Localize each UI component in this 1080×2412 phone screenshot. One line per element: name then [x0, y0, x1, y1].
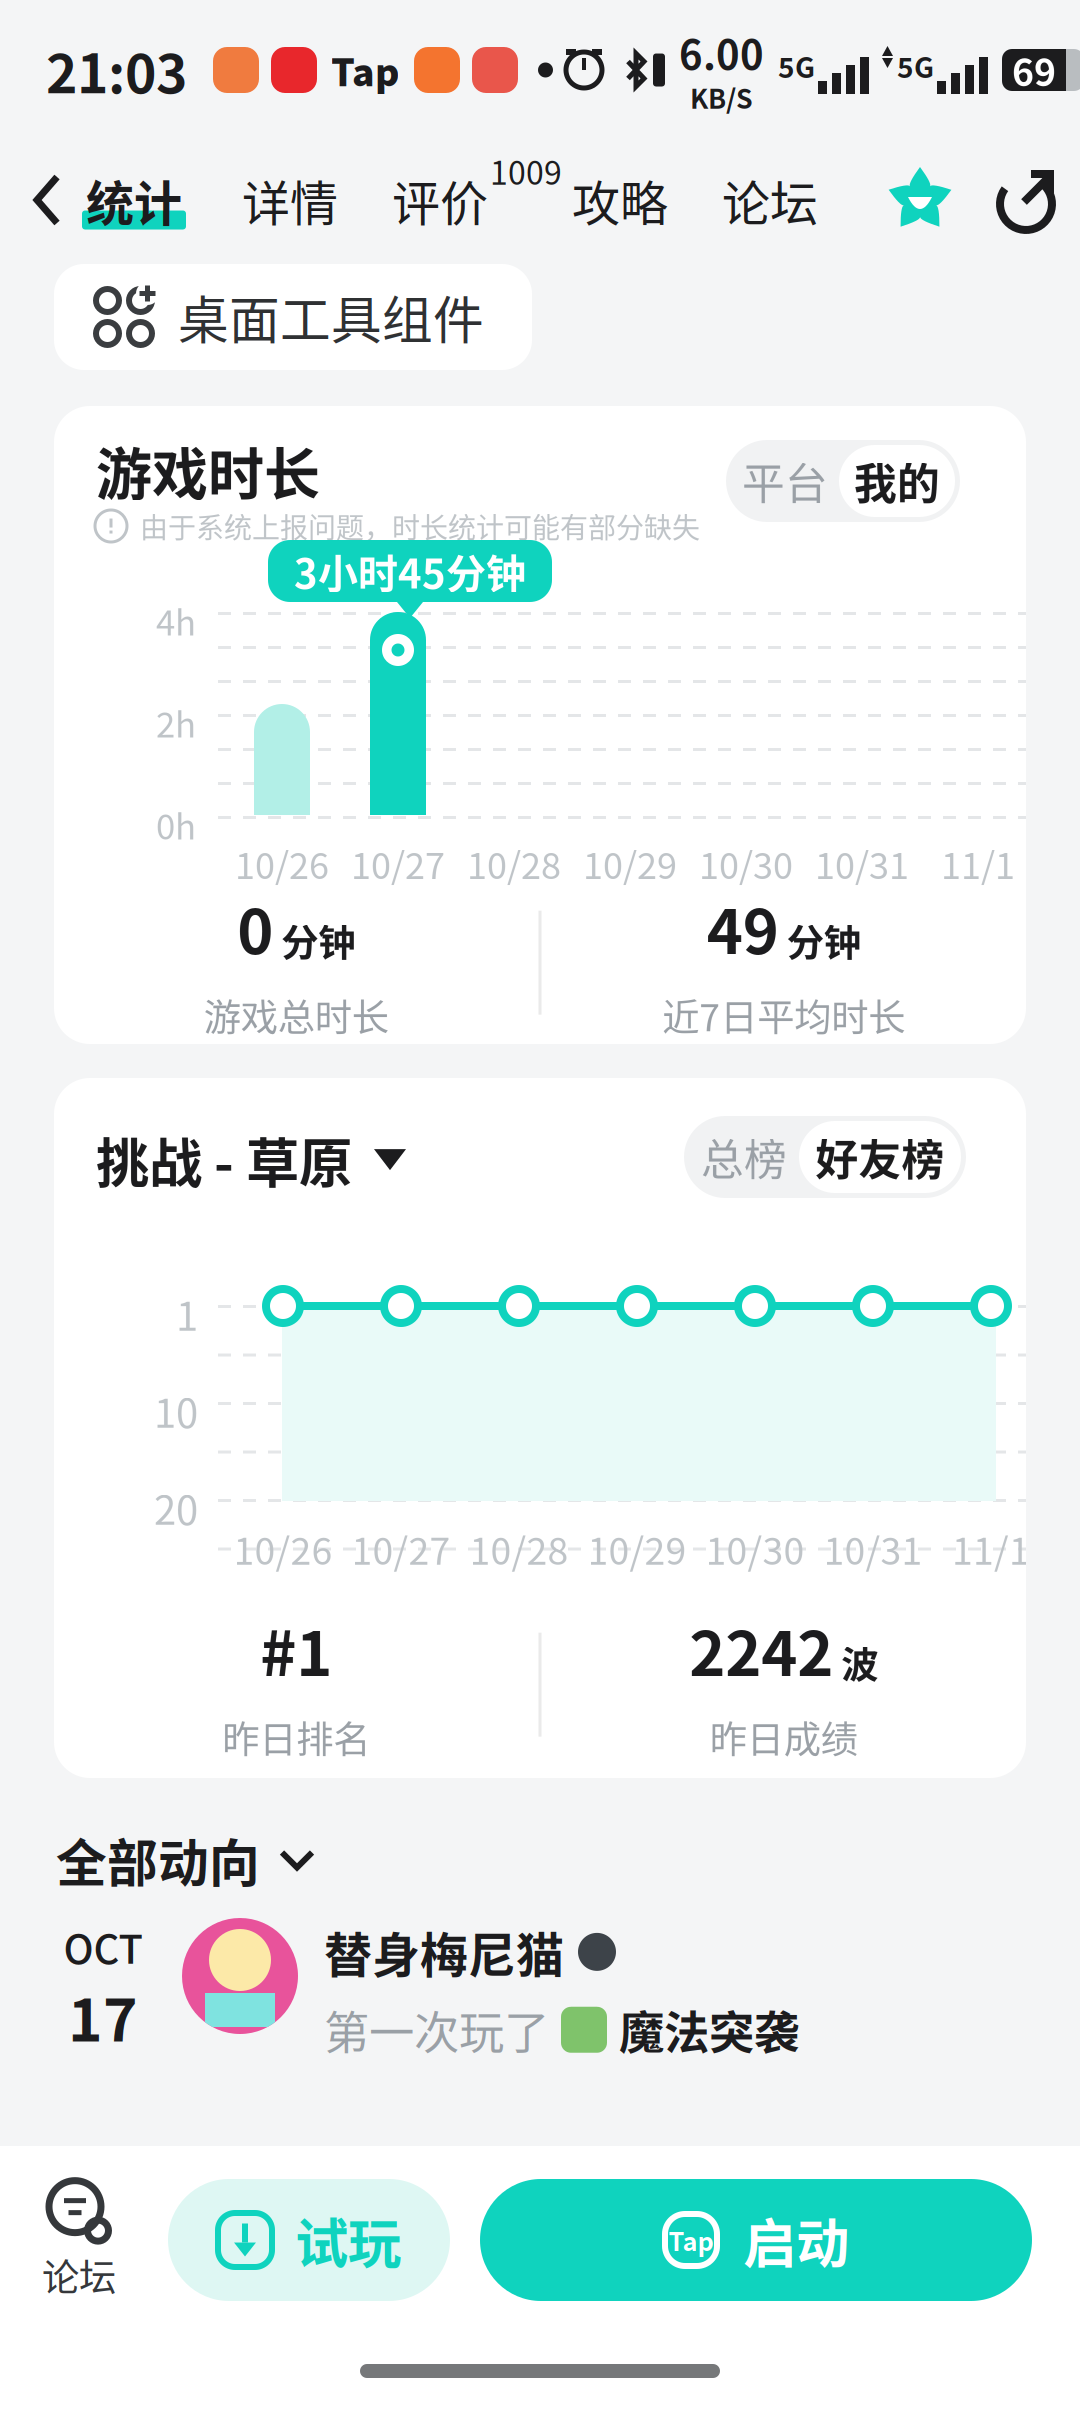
button[interactable]: 论坛: [722, 150, 818, 250]
staticText: 昨日成绩: [710, 1711, 858, 1763]
staticText: 统计: [86, 166, 182, 234]
staticText: 5G: [897, 46, 934, 85]
button[interactable]: 我的: [839, 445, 955, 517]
staticText: 全部动向: [56, 1824, 260, 1896]
button[interactable]: 攻略: [572, 150, 668, 250]
staticText: 10/30: [699, 838, 793, 889]
staticText: 游戏总时长: [204, 989, 389, 1041]
staticText: 分钟: [281, 914, 355, 967]
staticText: 10/28: [467, 838, 561, 889]
staticText: 10/30: [705, 1522, 804, 1575]
staticText: 替身梅尼猫: [324, 1918, 564, 1986]
staticText: 10/27: [351, 838, 445, 889]
staticText: 好友榜: [815, 1127, 944, 1187]
staticText: 总榜: [701, 1127, 787, 1187]
staticText: 10/29: [583, 838, 677, 889]
staticText: 论坛: [722, 166, 818, 234]
button[interactable]: 桌面工具组件: [54, 264, 532, 370]
button[interactable]: 好友榜: [799, 1121, 961, 1193]
staticText: 1009: [490, 148, 562, 193]
staticText: 启动: [743, 2202, 849, 2278]
button[interactable]: 详情: [242, 150, 338, 250]
staticText: 近7日平均时长: [662, 989, 905, 1041]
staticText: 第一次玩了: [324, 1998, 549, 2062]
staticText: 0: [237, 884, 273, 971]
staticText: 波: [841, 1636, 878, 1689]
staticText: 10/29: [587, 1522, 686, 1575]
staticText: Tap: [668, 2222, 713, 2258]
button[interactable]: Share: [994, 162, 1066, 238]
staticText: 评价: [392, 166, 488, 234]
button[interactable]: 挑战 - 草原: [96, 1122, 406, 1197]
staticText: 10/27: [351, 1522, 450, 1575]
staticText: 5G: [778, 46, 815, 85]
staticText: 1: [176, 1285, 198, 1341]
staticText: 0h: [156, 800, 196, 849]
staticText: OCT: [63, 1918, 142, 1974]
button[interactable]: 平台: [731, 445, 839, 517]
staticText: 20: [154, 1479, 198, 1535]
button[interactable]: 试玩: [168, 2179, 450, 2301]
staticText: 3小时45分钟: [294, 543, 526, 599]
staticText: 10/26: [233, 1522, 332, 1575]
staticText: 攻略: [572, 166, 668, 234]
staticText: 21:03: [46, 32, 187, 108]
staticText: 4h: [156, 596, 196, 645]
button[interactable]: 统计: [82, 150, 186, 250]
button[interactable]: Tap: [480, 2179, 1032, 2301]
staticText: 游戏时长: [96, 430, 320, 510]
staticText: 桌面工具组件: [178, 281, 484, 353]
staticText: 17: [68, 1974, 138, 2057]
staticText: 详情: [242, 166, 338, 234]
staticText: 魔法突袭: [619, 1998, 799, 2062]
staticText: 昨日排名: [222, 1711, 370, 1763]
staticText: 10/31: [823, 1522, 922, 1575]
button[interactable]: Favorite: [884, 162, 956, 238]
staticText: 49: [707, 884, 779, 971]
staticText: 论坛: [42, 2249, 116, 2301]
staticText: 6.00: [679, 24, 764, 80]
staticText: 分钟: [787, 914, 861, 967]
staticText: 10/31: [815, 838, 909, 889]
staticText: 我的: [854, 451, 940, 511]
staticText: 挑战 - 草原: [96, 1122, 352, 1197]
staticText: 11/1: [952, 1522, 1030, 1575]
staticText: 69: [1012, 44, 1056, 96]
staticText: 10/28: [469, 1522, 568, 1575]
staticText: KB/S: [690, 78, 753, 116]
button[interactable]: 总榜: [689, 1121, 799, 1193]
staticText: 10/26: [235, 838, 329, 889]
staticText: #1: [260, 1606, 332, 1693]
staticText: 2242: [689, 1606, 833, 1693]
button[interactable]: 论坛: [0, 2172, 164, 2308]
staticText: 11/1: [941, 838, 1015, 889]
staticText: 平台: [742, 451, 828, 511]
staticText: Tap: [331, 44, 400, 96]
button[interactable]: 评价: [392, 150, 560, 250]
staticText: 2h: [156, 698, 196, 747]
staticText: 试玩: [295, 2202, 401, 2278]
staticText: 10: [154, 1382, 198, 1438]
button[interactable]: Back: [14, 150, 82, 250]
staticText: 由于系统上报问题，时长统计可能有部分缺失: [140, 506, 700, 546]
button[interactable]: 全部动向: [56, 1828, 316, 1892]
